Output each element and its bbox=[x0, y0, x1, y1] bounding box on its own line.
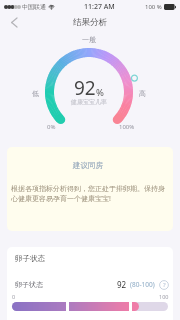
staticText: 高 bbox=[139, 89, 146, 98]
staticText: 卵子状态 bbox=[15, 280, 43, 289]
staticText: 100 % bbox=[145, 3, 162, 11]
button[interactable]: Back bbox=[2, 13, 26, 31]
staticText: 根据各项指标分析得到，您正处于排卵期。保持身心健康更容易孕育一个健康宝宝! bbox=[11, 184, 170, 203]
staticText: 建议同房 bbox=[73, 161, 103, 170]
staticText: (80-100) bbox=[130, 280, 155, 289]
staticText: ? bbox=[163, 281, 166, 289]
staticText: 11:27 AM bbox=[84, 2, 115, 12]
staticText: 92 bbox=[74, 75, 96, 101]
staticText: 中国联通 bbox=[22, 3, 46, 11]
button[interactable]: 建议同房 bbox=[7, 147, 173, 231]
staticText: 0 bbox=[12, 293, 16, 300]
staticText: 一般 bbox=[82, 35, 96, 44]
staticText: 0% bbox=[47, 123, 56, 131]
staticText: 92 bbox=[117, 279, 127, 290]
staticText: 100 bbox=[159, 293, 169, 300]
button[interactable]: Help bbox=[159, 280, 169, 290]
staticText: 健康宝宝几率 bbox=[60, 98, 118, 106]
staticText: 低 bbox=[32, 89, 39, 98]
staticText: 100% bbox=[119, 123, 135, 131]
staticText: 结果分析 bbox=[73, 17, 107, 28]
staticText: % bbox=[96, 86, 104, 99]
staticText: 卵子状态 bbox=[15, 254, 45, 263]
